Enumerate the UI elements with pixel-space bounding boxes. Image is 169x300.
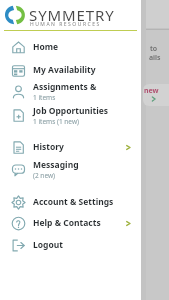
other: Home: [11, 40, 26, 55]
other: Logout: [11, 238, 26, 253]
button[interactable]: Job Opportunities: [0, 102, 141, 128]
staticText: Logout: [33, 239, 63, 251]
staticText: Job Opportunities: [33, 105, 109, 117]
staticText: History: [33, 141, 64, 153]
button[interactable]: Messaging: [0, 156, 141, 182]
staticText: 1 items: [33, 93, 56, 102]
other: Account and Settings: [11, 195, 26, 210]
button[interactable]: Account and Settings: [0, 191, 141, 213]
button[interactable]: Help and Contacts: [0, 212, 141, 234]
staticText: 1 items (1 new): [33, 117, 79, 126]
button[interactable]: My Availability: [0, 59, 141, 81]
other: Help and Contacts: [11, 216, 26, 231]
other: Messaging: [11, 162, 26, 177]
other: History: [11, 140, 26, 155]
staticText: My Availability: [33, 64, 96, 76]
staticText: Messaging: [33, 159, 79, 171]
staticText: Account & Settings: [33, 196, 114, 208]
staticText: Home: [33, 41, 59, 53]
staticText: SYMMETRY: [29, 5, 115, 25]
other: Job Opportunities: [11, 108, 26, 123]
button[interactable]: Logout: [0, 234, 141, 256]
staticText: Help & Contacts: [33, 217, 101, 229]
button[interactable]: History: [0, 136, 141, 158]
button[interactable]: Assignments and Timesheets: [0, 78, 141, 104]
staticText: (2 new): [33, 171, 55, 180]
staticText: ails: [149, 53, 161, 63]
other: My Availability: [11, 63, 26, 78]
other: Assignments and Timesheets: [11, 84, 26, 99]
staticText: new: [144, 86, 159, 96]
staticText: to: [150, 44, 158, 54]
button[interactable]: Home: [0, 36, 141, 58]
staticText: Assignments & Timesheets: [33, 81, 125, 93]
staticText: HUMAN RESOURCES: [30, 21, 101, 28]
